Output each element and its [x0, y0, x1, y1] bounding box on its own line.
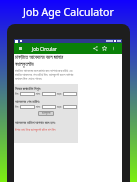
- staticText: ক্যালকুলেট: [42, 112, 51, 115]
- button[interactable]: [63, 105, 77, 109]
- staticText: বছর:: [57, 92, 62, 96]
- staticText: চাকরিতে আবেদনের বয়স জানার জন্য আপনার জন…: [15, 69, 77, 81]
- staticText: দিন:: [15, 92, 19, 96]
- staticText: মাস:: [36, 92, 41, 96]
- button[interactable]: [20, 105, 35, 109]
- button[interactable]: ক্যালকুলেট: [38, 111, 54, 116]
- staticText: দিন:: [15, 105, 19, 109]
- button[interactable]: [42, 92, 56, 96]
- staticText: চাকরিতে আবেদনের বয়স জানার ক্যালকুলেটর: [15, 54, 63, 67]
- button[interactable]: More options: [109, 43, 118, 54]
- staticText: বছর:: [57, 105, 62, 109]
- staticText: উপরে তথ্য দিয়ে ক্যালকুলেট বাটনে চাপ দিন: [15, 128, 56, 132]
- staticText: Job Age Calculator: [23, 5, 114, 19]
- button[interactable]: Favorite: [100, 43, 109, 54]
- button[interactable]: [20, 92, 35, 96]
- staticText: মাস:: [36, 105, 41, 109]
- button[interactable]: Menu: [17, 43, 23, 54]
- staticText: আবেদনের তারিখে আপনার বয়স হবে:: [15, 120, 56, 125]
- button[interactable]: [63, 92, 77, 96]
- staticText: Job Circular: [32, 46, 57, 52]
- button[interactable]: [42, 105, 56, 109]
- staticText: আবেদনের শেষ তারিখ:: [15, 99, 40, 104]
- button[interactable]: Share: [91, 43, 100, 54]
- staticText: নিজের জন্মতারিখ লিখুন:: [15, 86, 41, 91]
